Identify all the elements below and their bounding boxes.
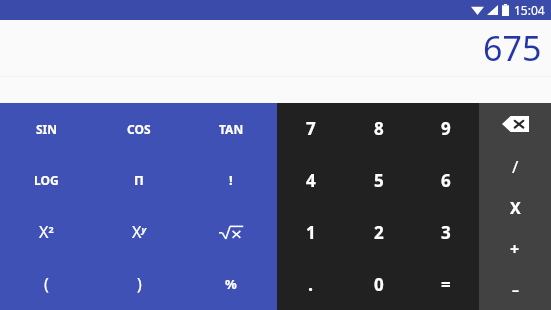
- button[interactable]: Π: [93, 154, 185, 206]
- staticText: 5: [374, 169, 384, 192]
- button[interactable]: X2: [0, 206, 93, 258]
- staticText: =: [441, 273, 451, 296]
- button[interactable]: .: [277, 258, 345, 310]
- staticText: TAN: [219, 121, 244, 137]
- button[interactable]: 7: [277, 103, 345, 154]
- staticText: (: [44, 273, 49, 295]
- staticText: X2: [39, 221, 54, 243]
- staticText: 1: [306, 221, 316, 244]
- staticText: 4: [306, 169, 316, 192]
- button[interactable]: 8: [345, 103, 412, 154]
- button[interactable]: 5: [345, 154, 412, 206]
- button[interactable]: /: [479, 145, 551, 187]
- button[interactable]: 6: [412, 154, 479, 206]
- button[interactable]: %: [185, 258, 277, 310]
- button[interactable]: –: [479, 269, 551, 310]
- button[interactable]: ): [93, 258, 185, 310]
- staticText: 0: [374, 273, 384, 296]
- staticText: +: [510, 238, 520, 260]
- staticText: LOG: [34, 172, 59, 188]
- staticText: 675: [483, 25, 542, 71]
- button[interactable]: TAN: [185, 103, 277, 154]
- button[interactable]: 2: [345, 206, 412, 258]
- button[interactable]: !: [185, 154, 277, 206]
- staticText: 8: [374, 117, 384, 140]
- button[interactable]: +: [479, 228, 551, 269]
- staticText: Xy: [132, 221, 147, 243]
- staticText: 15:04: [514, 2, 545, 18]
- button[interactable]: (: [0, 258, 93, 310]
- staticText: X: [510, 197, 521, 219]
- button[interactable]: X: [479, 187, 551, 228]
- button[interactable]: Backspace: [479, 103, 551, 145]
- staticText: %: [225, 275, 237, 293]
- button[interactable]: 3: [412, 206, 479, 258]
- staticText: 6: [441, 169, 451, 192]
- staticText: Π: [134, 171, 144, 189]
- staticText: –: [512, 280, 519, 299]
- staticText: SIN: [36, 121, 58, 137]
- staticText: .: [308, 272, 314, 297]
- button[interactable]: 0: [345, 258, 412, 310]
- button[interactable]: [185, 206, 277, 258]
- button[interactable]: SIN: [0, 103, 93, 154]
- button[interactable]: 1: [277, 206, 345, 258]
- button[interactable]: 9: [412, 103, 479, 154]
- button[interactable]: Xy: [93, 206, 185, 258]
- button[interactable]: LOG: [0, 154, 93, 206]
- staticText: /: [512, 155, 519, 178]
- staticText: 2: [374, 221, 384, 244]
- staticText: 3: [441, 221, 451, 244]
- staticText: 9: [441, 117, 451, 140]
- button[interactable]: 4: [277, 154, 345, 206]
- button[interactable]: =: [412, 258, 479, 310]
- staticText: 7: [306, 117, 316, 140]
- button[interactable]: COS: [93, 103, 185, 154]
- staticText: ): [137, 273, 142, 295]
- staticText: !: [229, 171, 233, 189]
- staticText: COS: [127, 121, 151, 137]
